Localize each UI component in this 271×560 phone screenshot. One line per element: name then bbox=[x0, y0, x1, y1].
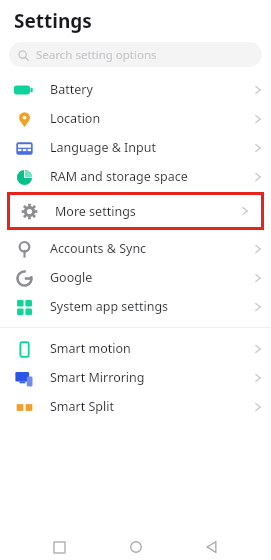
button[interactable]: Smart Split bbox=[0, 392, 271, 421]
staticText: RAM and storage space bbox=[50, 168, 188, 185]
button[interactable]: Google bbox=[0, 263, 271, 292]
button[interactable]: Location bbox=[0, 104, 271, 133]
staticText: More settings bbox=[55, 203, 136, 220]
staticText: Search setting options bbox=[36, 47, 157, 63]
button[interactable]: RAM and storage space bbox=[0, 162, 271, 191]
staticText: Smart motion bbox=[50, 340, 131, 357]
button[interactable]: Battery bbox=[0, 75, 271, 104]
button[interactable]: Smart Mirroring bbox=[0, 363, 271, 392]
staticText: Smart Split bbox=[50, 398, 115, 415]
button[interactable]: Language & Input bbox=[0, 133, 271, 162]
button[interactable]: Smart motion bbox=[0, 334, 271, 363]
staticText: Settings bbox=[14, 8, 92, 34]
button[interactable]: Home bbox=[119, 534, 153, 560]
staticText: Smart Mirroring bbox=[50, 369, 145, 386]
staticText: System app settings bbox=[50, 298, 169, 315]
staticText: Google bbox=[50, 269, 93, 286]
button[interactable]: Accounts & Sync bbox=[0, 234, 271, 263]
staticText: Location bbox=[50, 110, 101, 127]
button[interactable]: More settings bbox=[10, 195, 261, 227]
button[interactable]: Back bbox=[195, 534, 229, 560]
staticText: Accounts & Sync bbox=[50, 240, 147, 257]
staticText: Battery bbox=[50, 81, 93, 98]
staticText: Language & Input bbox=[50, 139, 156, 156]
button[interactable]: Recent apps bbox=[42, 534, 76, 560]
button[interactable]: Search setting options bbox=[9, 42, 262, 67]
button[interactable]: System app settings bbox=[0, 292, 271, 321]
